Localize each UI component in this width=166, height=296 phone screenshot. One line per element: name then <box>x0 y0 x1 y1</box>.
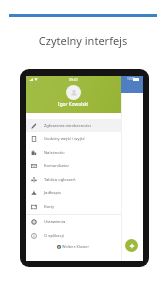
button[interactable]: Jadłospis <box>26 186 121 200</box>
staticText: Komunikator <box>44 163 70 169</box>
staticText: Godziny wejść i wyjść <box>44 136 85 142</box>
staticText: 09:41 <box>26 77 121 82</box>
button[interactable]: Karty <box>26 200 121 214</box>
staticText: O aplikacji <box>44 233 64 239</box>
staticText: Karty <box>44 204 55 210</box>
staticText: Wolters Kluwer <box>62 244 89 249</box>
button[interactable]: Należności <box>26 146 121 160</box>
staticText: Należności <box>44 150 65 156</box>
staticText: Tablica ogłoszeń <box>44 177 76 183</box>
button[interactable]: Ustawienia <box>26 215 121 229</box>
staticText: Ustawienia <box>44 219 66 225</box>
staticText: Czytelny interfejs <box>0 33 166 48</box>
staticText: Jadłospis <box>44 190 61 196</box>
button[interactable]: Godziny wejść i wyjść <box>26 132 121 146</box>
button[interactable]: Komunikator <box>26 159 121 173</box>
staticText: 100% <box>127 77 136 81</box>
button[interactable]: Add <box>125 239 138 252</box>
staticText: Zgłoszenia nieobecności <box>44 123 91 129</box>
button[interactable]: Zgłoszenia nieobecności <box>26 119 121 133</box>
button[interactable]: O aplikacji <box>26 229 121 243</box>
button[interactable]: Tablica ogłoszeń <box>26 173 121 187</box>
staticText: Igor Kowalski <box>58 101 89 108</box>
